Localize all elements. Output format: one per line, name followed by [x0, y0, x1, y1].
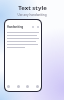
- staticText: Handwriting: [7, 25, 24, 29]
- staticText: Use any handwriting: [17, 13, 47, 17]
- staticText: Text style: [18, 4, 47, 12]
